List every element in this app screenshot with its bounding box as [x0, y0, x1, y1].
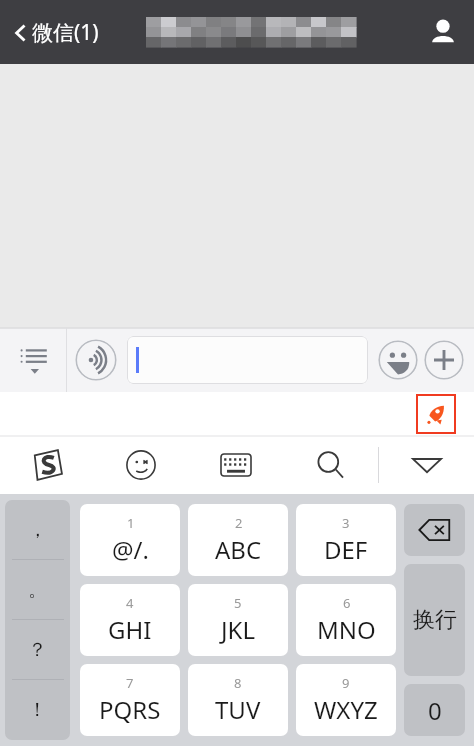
staticText: 0 — [428, 694, 442, 727]
button[interactable]: Voice input — [75, 339, 117, 381]
button[interactable]: Quick send — [416, 394, 456, 434]
staticText: ， — [28, 518, 47, 542]
button[interactable]: Keyboard layout — [188, 436, 283, 494]
staticText: 6 — [343, 594, 351, 612]
button[interactable]: 。 — [5, 560, 70, 620]
staticText: 1 — [127, 514, 135, 532]
staticText: 。 — [28, 578, 47, 602]
button[interactable]: ？ — [5, 620, 70, 680]
staticText: 8 — [234, 674, 242, 692]
button[interactable]: 0 — [404, 684, 465, 736]
button[interactable]: 1 — [80, 504, 180, 576]
staticText: 4 — [126, 594, 134, 612]
button[interactable]: 8 — [188, 664, 288, 736]
button[interactable]: 3 — [296, 504, 396, 576]
staticText: WXYZ — [314, 693, 378, 726]
button[interactable]: 9 — [296, 664, 396, 736]
button[interactable]: 5 — [188, 584, 288, 656]
staticText: ！ — [28, 698, 47, 722]
staticText: 2 — [235, 514, 243, 532]
staticText: ？ — [28, 638, 47, 662]
button[interactable]: Message input — [127, 336, 368, 384]
staticText: 微信(1) — [32, 18, 99, 47]
staticText: MNO — [317, 613, 376, 646]
staticText: ABC — [215, 533, 262, 566]
button[interactable]: Emoticons — [94, 436, 188, 494]
button[interactable]: 6 — [296, 584, 396, 656]
staticText: @/. — [112, 533, 149, 566]
button[interactable]: ！ — [5, 680, 70, 740]
button[interactable]: Search — [283, 436, 378, 494]
button[interactable]: Quick replies — [0, 328, 66, 392]
button[interactable]: 2 — [188, 504, 288, 576]
staticText: 换行 — [413, 606, 457, 634]
button[interactable]: Input method settings — [0, 436, 94, 494]
button[interactable]: 微信(1) — [10, 18, 99, 47]
staticText: PQRS — [99, 693, 161, 726]
button[interactable]: 4 — [80, 584, 180, 656]
staticText: 3 — [342, 514, 350, 532]
staticText: 9 — [342, 674, 350, 692]
button[interactable]: Backspace — [404, 504, 465, 556]
button[interactable]: 7 — [80, 664, 180, 736]
staticText: GHI — [108, 613, 152, 646]
button[interactable]: More — [424, 340, 464, 380]
button[interactable]: Emoji — [378, 340, 418, 380]
staticText: JKL — [221, 613, 255, 646]
button[interactable]: ， — [5, 500, 70, 560]
button[interactable]: Contact profile — [426, 15, 460, 49]
button[interactable]: 换行 — [404, 564, 465, 676]
staticText: 5 — [234, 594, 242, 612]
button[interactable]: Hide keyboard — [379, 436, 474, 494]
staticText: TUV — [215, 693, 261, 726]
staticText: 7 — [126, 674, 134, 692]
staticText: DEF — [324, 533, 368, 566]
